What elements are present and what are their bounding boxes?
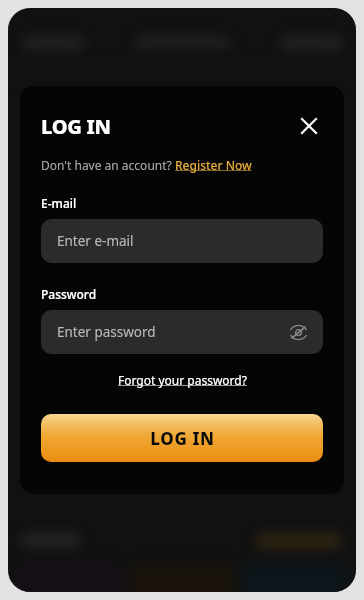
button[interactable]: Register Now: [175, 157, 252, 173]
staticText: Enter password: [57, 323, 156, 341]
button[interactable]: Enter e-mail: [41, 219, 323, 263]
button[interactable]: LOG IN: [41, 414, 323, 462]
button[interactable]: Show password: [287, 321, 309, 343]
staticText: Don't have an account?: [41, 157, 175, 173]
button[interactable]: Close: [295, 112, 323, 140]
staticText: LOG IN: [150, 427, 215, 450]
staticText: Enter e-mail: [57, 232, 134, 250]
button[interactable]: Forgot your password?: [41, 372, 323, 388]
button[interactable]: Enter password: [41, 310, 323, 354]
staticText: E-mail: [41, 195, 77, 211]
staticText: LOG IN: [41, 113, 111, 140]
staticText: Forgot your password?: [118, 372, 247, 388]
staticText: Register Now: [175, 157, 252, 173]
staticText: Password: [41, 286, 97, 302]
